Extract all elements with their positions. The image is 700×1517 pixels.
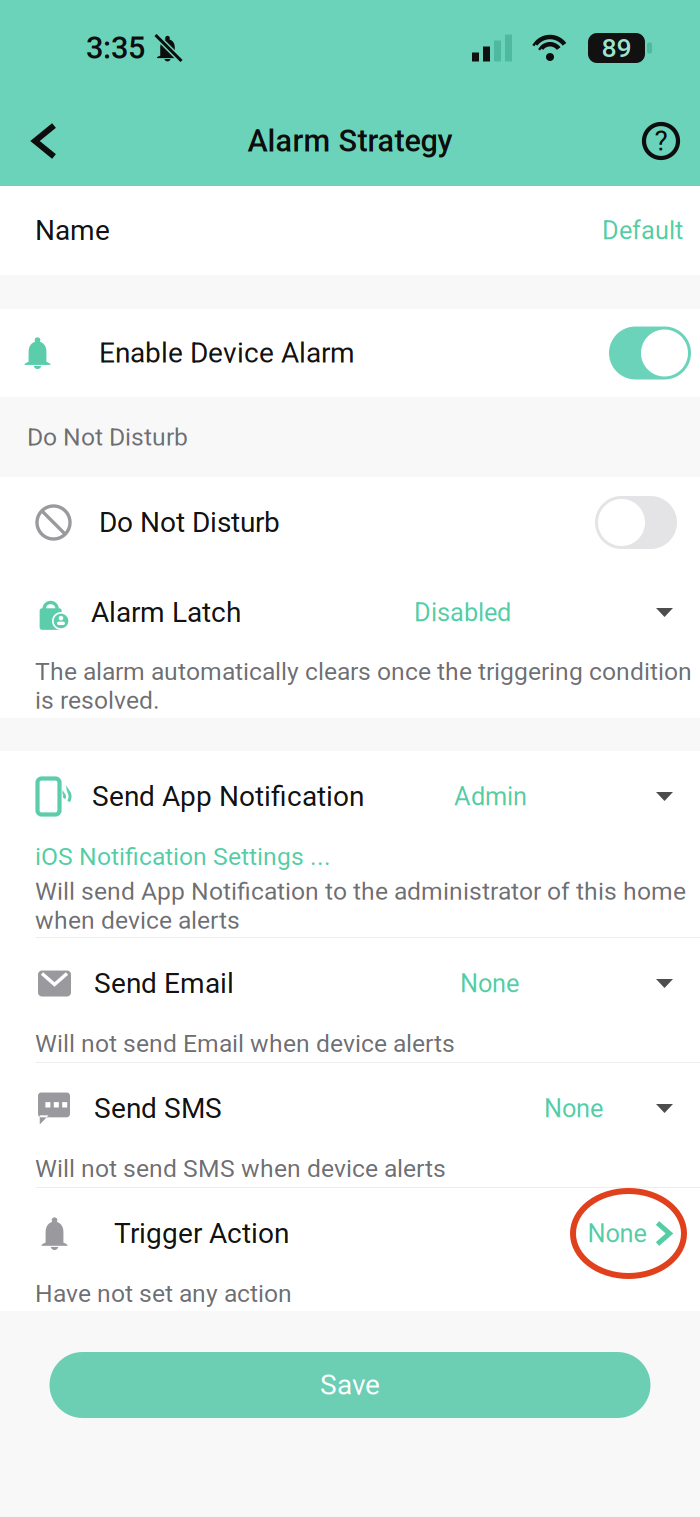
button[interactable]: Trigger Action	[0, 1188, 700, 1279]
staticText: Do Not Disturb	[27, 422, 188, 451]
staticText: Alarm Strategy	[247, 123, 452, 159]
staticText: Default	[602, 216, 683, 245]
staticText: The alarm automatically clears once the …	[35, 657, 692, 715]
staticText: 3:35	[86, 30, 145, 66]
button[interactable]: Back	[8, 101, 81, 180]
staticText: Send App Notification	[92, 780, 364, 813]
staticText: Admin	[454, 782, 527, 811]
button[interactable]: Name	[0, 186, 700, 275]
staticText: ?	[654, 125, 667, 157]
button[interactable]: Send App Notification	[0, 751, 700, 842]
staticText: iOS Notification Settings ...	[35, 842, 331, 871]
button[interactable]: Enable Device Alarm	[609, 326, 691, 379]
staticText: Send Email	[94, 967, 234, 1000]
staticText: Save	[320, 1369, 380, 1401]
button[interactable]: Help	[622, 101, 700, 181]
staticText: Enable Device Alarm	[99, 337, 355, 369]
button[interactable]: Do Not Disturb	[595, 496, 677, 549]
button[interactable]: Save	[49, 1352, 650, 1418]
staticText: Have not set any action	[35, 1279, 292, 1308]
staticText: Trigger Action	[114, 1217, 289, 1250]
staticText: Will not send SMS when device alerts	[35, 1154, 446, 1183]
staticText: Disabled	[414, 598, 511, 627]
button[interactable]: Send Email	[0, 938, 700, 1029]
staticText: Will not send Email when device alerts	[35, 1029, 455, 1058]
button[interactable]: Alarm Latch	[0, 568, 700, 657]
staticText: Do Not Disturb	[99, 506, 280, 539]
staticText: 89	[601, 32, 631, 64]
button[interactable]: iOS Notification Settings ...	[35, 842, 331, 871]
staticText: None	[460, 969, 519, 998]
staticText: Alarm Latch	[91, 596, 241, 629]
button[interactable]: Send SMS	[0, 1063, 700, 1154]
staticText: Will send App Notification to the admini…	[35, 877, 686, 935]
staticText: Name	[35, 214, 110, 247]
staticText: Send SMS	[94, 1092, 222, 1125]
staticText: None	[544, 1094, 603, 1123]
staticText: None	[587, 1219, 646, 1248]
